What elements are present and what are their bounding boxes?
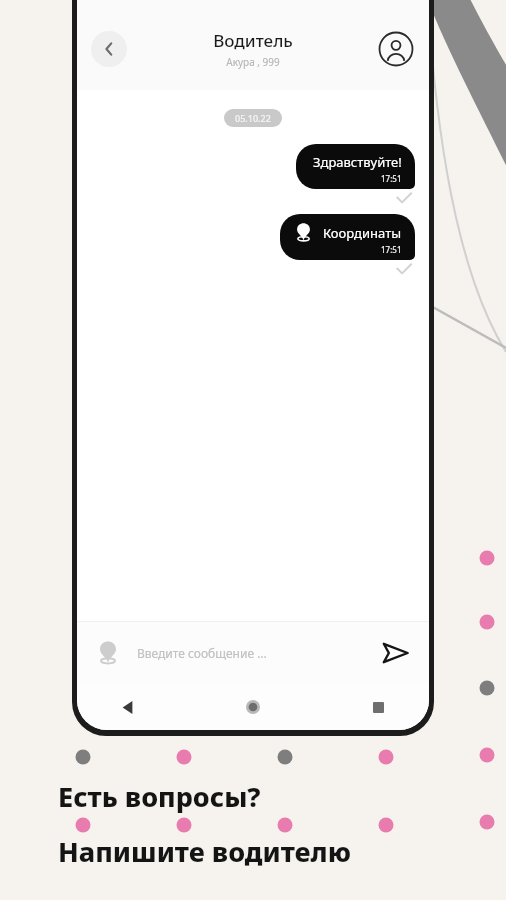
button[interactable]: Back — [111, 690, 145, 724]
staticText: Напишите водителю — [58, 833, 352, 870]
staticText: Водитель — [213, 29, 293, 52]
button[interactable]: Введите сообщение ... — [137, 645, 367, 661]
button[interactable]: Send location — [93, 638, 123, 668]
button[interactable]: Здравствуйте! — [296, 144, 415, 189]
staticText: Введите сообщение ... — [137, 645, 267, 661]
staticText: Здравствуйте! — [313, 153, 402, 171]
button[interactable]: Home — [236, 690, 270, 724]
staticText: Акура , 999 — [226, 55, 280, 69]
button[interactable]: Координаты — [280, 214, 415, 260]
staticText: 05.10.22 — [235, 112, 271, 124]
button[interactable]: Profile — [377, 30, 415, 68]
staticText: 17:51 — [381, 244, 402, 255]
button[interactable]: Back — [91, 31, 127, 67]
staticText: Есть вопросы? — [58, 778, 261, 815]
button[interactable]: Recents — [361, 690, 395, 724]
button[interactable]: Send — [377, 635, 413, 671]
staticText: 17:51 — [381, 173, 402, 184]
staticText: Координаты — [323, 224, 402, 242]
